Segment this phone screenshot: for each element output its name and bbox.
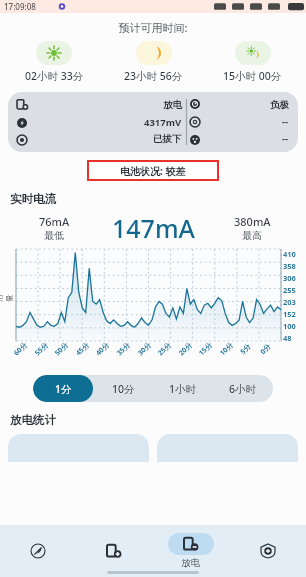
staticText: 25分 [156,340,174,358]
staticText: 已拔下 [153,133,182,145]
staticText: 50分 [53,340,71,358]
staticText: 负极 [270,99,289,111]
staticText: 203 [283,297,296,307]
staticText: 147mA [112,211,195,245]
staticText: 35分 [115,340,133,358]
button[interactable]: 23小时 56分 [104,41,203,83]
staticText: 6小时 [229,382,257,396]
button[interactable]: 电池状况: 较差 [87,160,219,181]
staticText: 358 [283,261,296,271]
staticText: 放电统计 [10,413,56,427]
staticText: 使用量 (mA) [0,289,35,302]
staticText: 4317mV [144,116,182,129]
staticText: 最低 [44,229,64,242]
staticText: 55分 [33,340,51,358]
staticText: 实时电流 [10,192,56,206]
staticText: 380mA [234,214,271,229]
staticText: 60分 [12,340,30,358]
staticText: 20分 [177,340,195,358]
button[interactable] [8,434,149,462]
button[interactable]: 放电 [152,525,229,577]
button[interactable]: 放电 [8,92,298,152]
staticText: 5分 [238,341,254,357]
staticText: 放电 [181,557,200,569]
button[interactable]: 6小时 [213,375,273,402]
staticText: -- [282,115,289,128]
button[interactable]: 15小时 00分 [203,41,302,83]
staticText: 255 [283,285,296,295]
button[interactable]: 省电 [0,525,76,577]
staticText: 30分 [136,340,154,358]
staticText: 0分 [258,341,274,357]
staticText: 17:09:08 [4,1,36,12]
staticText: 23小时 56分 [124,69,183,83]
staticText: -- [282,132,289,145]
staticText: 10分 [112,382,135,396]
button[interactable]: 充电 [76,525,152,577]
button[interactable]: 1分 [33,375,93,402]
button[interactable]: 02小时 33分 [4,41,104,83]
staticText: 45分 [74,340,92,358]
staticText: 02小时 33分 [25,69,84,83]
staticText: 40分 [94,340,112,358]
button[interactable]: 10分 [93,375,153,402]
staticText: 1分 [55,382,72,396]
button[interactable]: 1小时 [153,375,213,402]
staticText: 最高 [242,229,262,242]
staticText: 预计可用时间: [0,20,306,35]
staticText: 48 [283,333,292,343]
staticText: 100 [283,321,296,331]
staticText: 306 [283,273,296,283]
staticText: 152 [283,309,296,319]
staticText: 电池状况: 较差 [120,164,186,178]
button[interactable] [157,434,298,462]
staticText: 10分 [218,340,236,358]
staticText: 1小时 [169,382,197,396]
staticText: 15小时 00分 [223,69,282,83]
staticText: 15分 [197,340,215,358]
button[interactable]: 健康 [229,525,306,577]
staticText: 410 [283,249,296,259]
staticText: 放电 [163,99,182,111]
staticText: 76mA [39,214,70,229]
